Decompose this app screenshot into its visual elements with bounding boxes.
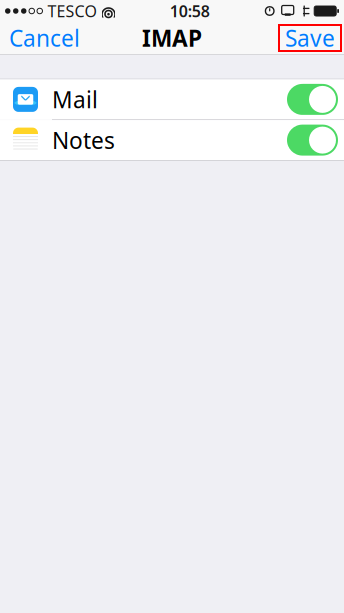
button[interactable]: Save [279, 25, 344, 51]
button[interactable]: Cancel [0, 22, 89, 54]
staticText: Save [285, 23, 335, 53]
button[interactable]: Toggle Mail [279, 79, 344, 120]
staticText: 10:58 [170, 0, 210, 22]
button[interactable]: Toggle Notes [279, 120, 344, 161]
staticText: Cancel [9, 23, 80, 53]
staticText: Notes [52, 125, 115, 155]
staticText: IMAP [142, 23, 202, 53]
staticText: TESCO [47, 0, 96, 22]
staticText: Mail [52, 84, 98, 114]
